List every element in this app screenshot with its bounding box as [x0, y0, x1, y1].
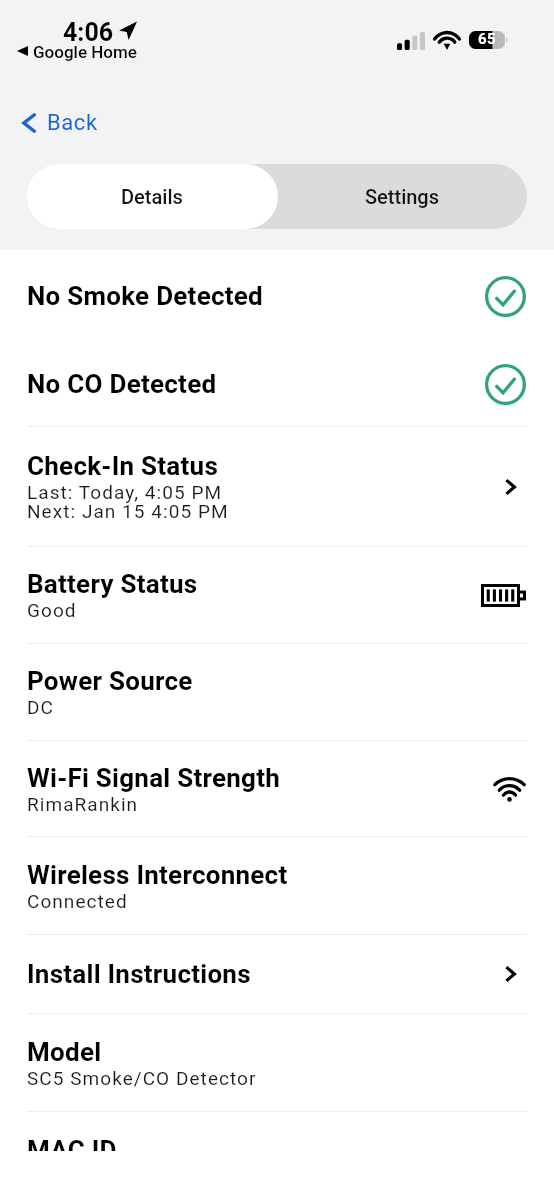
- staticText: Battery Status: [27, 569, 198, 599]
- staticText: 65: [478, 30, 497, 48]
- staticText: Connected: [27, 890, 128, 912]
- button[interactable]: Back: [0, 96, 114, 150]
- staticText: Power Source: [27, 666, 193, 696]
- staticText: DC: [27, 696, 54, 718]
- staticText: MAC ID: [27, 1135, 117, 1151]
- staticText: Wi-Fi Signal Strength: [27, 763, 281, 793]
- staticText: No Smoke Detected: [27, 281, 264, 311]
- other: Open: [505, 478, 526, 496]
- staticText: Details: [121, 185, 183, 208]
- staticText: SC5 Smoke/CO Detector: [27, 1067, 257, 1089]
- button[interactable]: Details: [26, 164, 278, 229]
- staticText: Settings: [365, 185, 440, 208]
- staticText: 4:06: [63, 18, 114, 47]
- staticText: Wireless Interconnect: [27, 860, 288, 890]
- staticText: RimaRankin: [27, 793, 139, 815]
- staticText: Google Home: [33, 42, 137, 62]
- staticText: No CO Detected: [27, 369, 217, 399]
- staticText: Back: [47, 110, 98, 136]
- staticText: Install Instructions: [27, 959, 251, 989]
- staticText: Model: [27, 1037, 102, 1067]
- other: Open: [505, 965, 526, 983]
- button[interactable]: Install Instructions: [0, 935, 554, 1013]
- button[interactable]: Check-In Status: [0, 427, 554, 546]
- button[interactable]: Settings: [278, 164, 527, 229]
- staticText: Good: [27, 599, 77, 621]
- staticText: Last: Today, 4:05 PM Next: Jan 15 4:05 P…: [27, 481, 229, 523]
- staticText: Check-In Status: [27, 451, 219, 481]
